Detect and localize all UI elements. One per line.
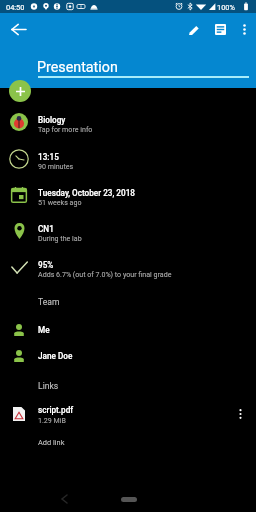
staticText: Presentation [37,59,118,76]
button[interactable]: Back [7,18,30,41]
staticText: Links [38,381,59,391]
staticText: Biology [38,115,66,125]
staticText: 04:50 [6,3,25,12]
staticText: 1.29 MiB [38,416,66,424]
staticText: During the lab [38,234,82,242]
staticText: Team [38,297,60,307]
staticText: 13:15 [38,152,59,162]
staticText: Add link [38,438,65,447]
button[interactable]: More options [233,18,255,40]
button[interactable]: CN1 [0,213,256,249]
button[interactable]: 95% [0,249,256,285]
button[interactable]: Me [0,317,256,343]
staticText: Tap for more info [38,125,93,133]
button[interactable]: Biology [0,104,256,140]
staticText: Jane Doe [38,351,73,361]
button[interactable]: Tuesday, October 23, 2018 [0,177,256,213]
staticText: Me [38,325,50,335]
button[interactable]: Add [9,80,31,102]
button[interactable]: Jane Doe [0,343,256,369]
staticText: Tuesday, October 23, 2018 [38,188,135,198]
button[interactable]: Back [56,491,72,507]
button[interactable]: script.pdf [0,401,256,427]
button[interactable]: Home [111,492,147,506]
staticText: Adds 6.7% (out of 7.0%) to your final gr… [38,270,172,278]
staticText: 100% [217,3,235,12]
button[interactable]: 13:15 [0,141,256,177]
staticText: 95% [38,260,54,270]
staticText: CN1 [38,224,54,234]
button[interactable]: Add link [0,430,256,454]
button[interactable]: Edit [183,18,206,41]
staticText: 51 weeks ago [38,198,82,206]
staticText: 90 minutes [38,162,74,170]
button[interactable]: Subject [209,18,232,41]
button[interactable]: File options [229,403,251,425]
staticText: script.pdf [38,405,74,415]
